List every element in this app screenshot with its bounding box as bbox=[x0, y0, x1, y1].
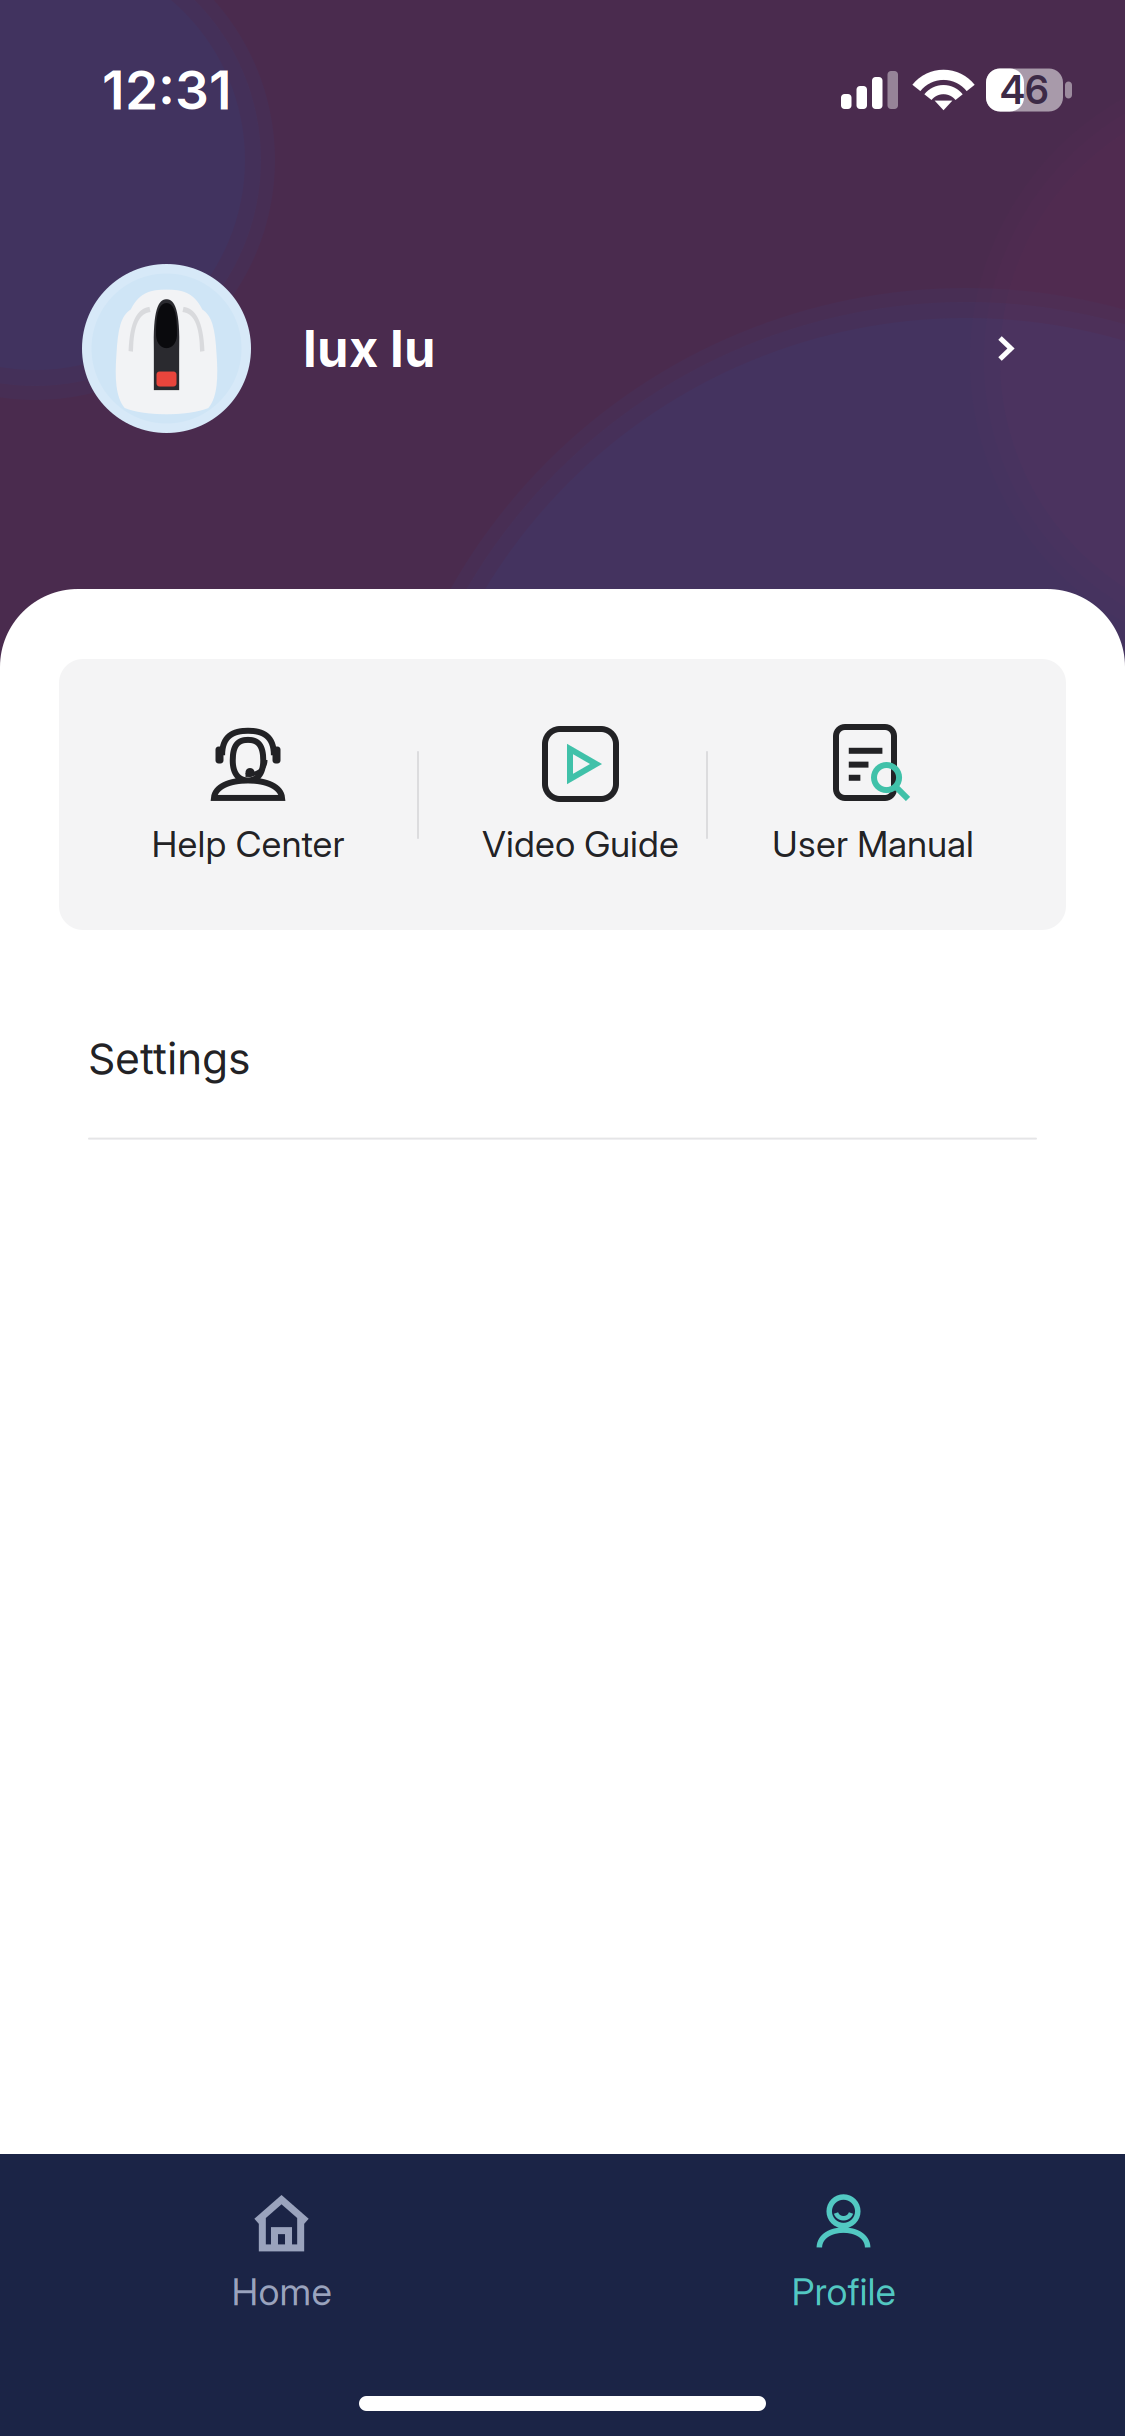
staticText: Profile bbox=[791, 2269, 895, 2314]
staticText: Video Guide bbox=[482, 822, 679, 866]
staticText: lux lu bbox=[303, 318, 436, 379]
button[interactable]: Home bbox=[0, 2197, 562, 2347]
button[interactable]: lux lu bbox=[0, 264, 1125, 433]
staticText: 12:31 bbox=[102, 58, 232, 122]
button[interactable]: Video Guide bbox=[419, 659, 706, 930]
staticText: Home bbox=[231, 2269, 331, 2314]
button[interactable]: Profile bbox=[562, 2197, 1124, 2347]
staticText: User Manual bbox=[772, 822, 974, 866]
staticText: Settings bbox=[88, 1033, 251, 1085]
button[interactable]: Help Center bbox=[59, 659, 417, 930]
staticText: Help Center bbox=[151, 822, 344, 866]
staticText: 46 bbox=[1000, 67, 1049, 113]
button[interactable]: User Manual bbox=[708, 659, 1066, 930]
